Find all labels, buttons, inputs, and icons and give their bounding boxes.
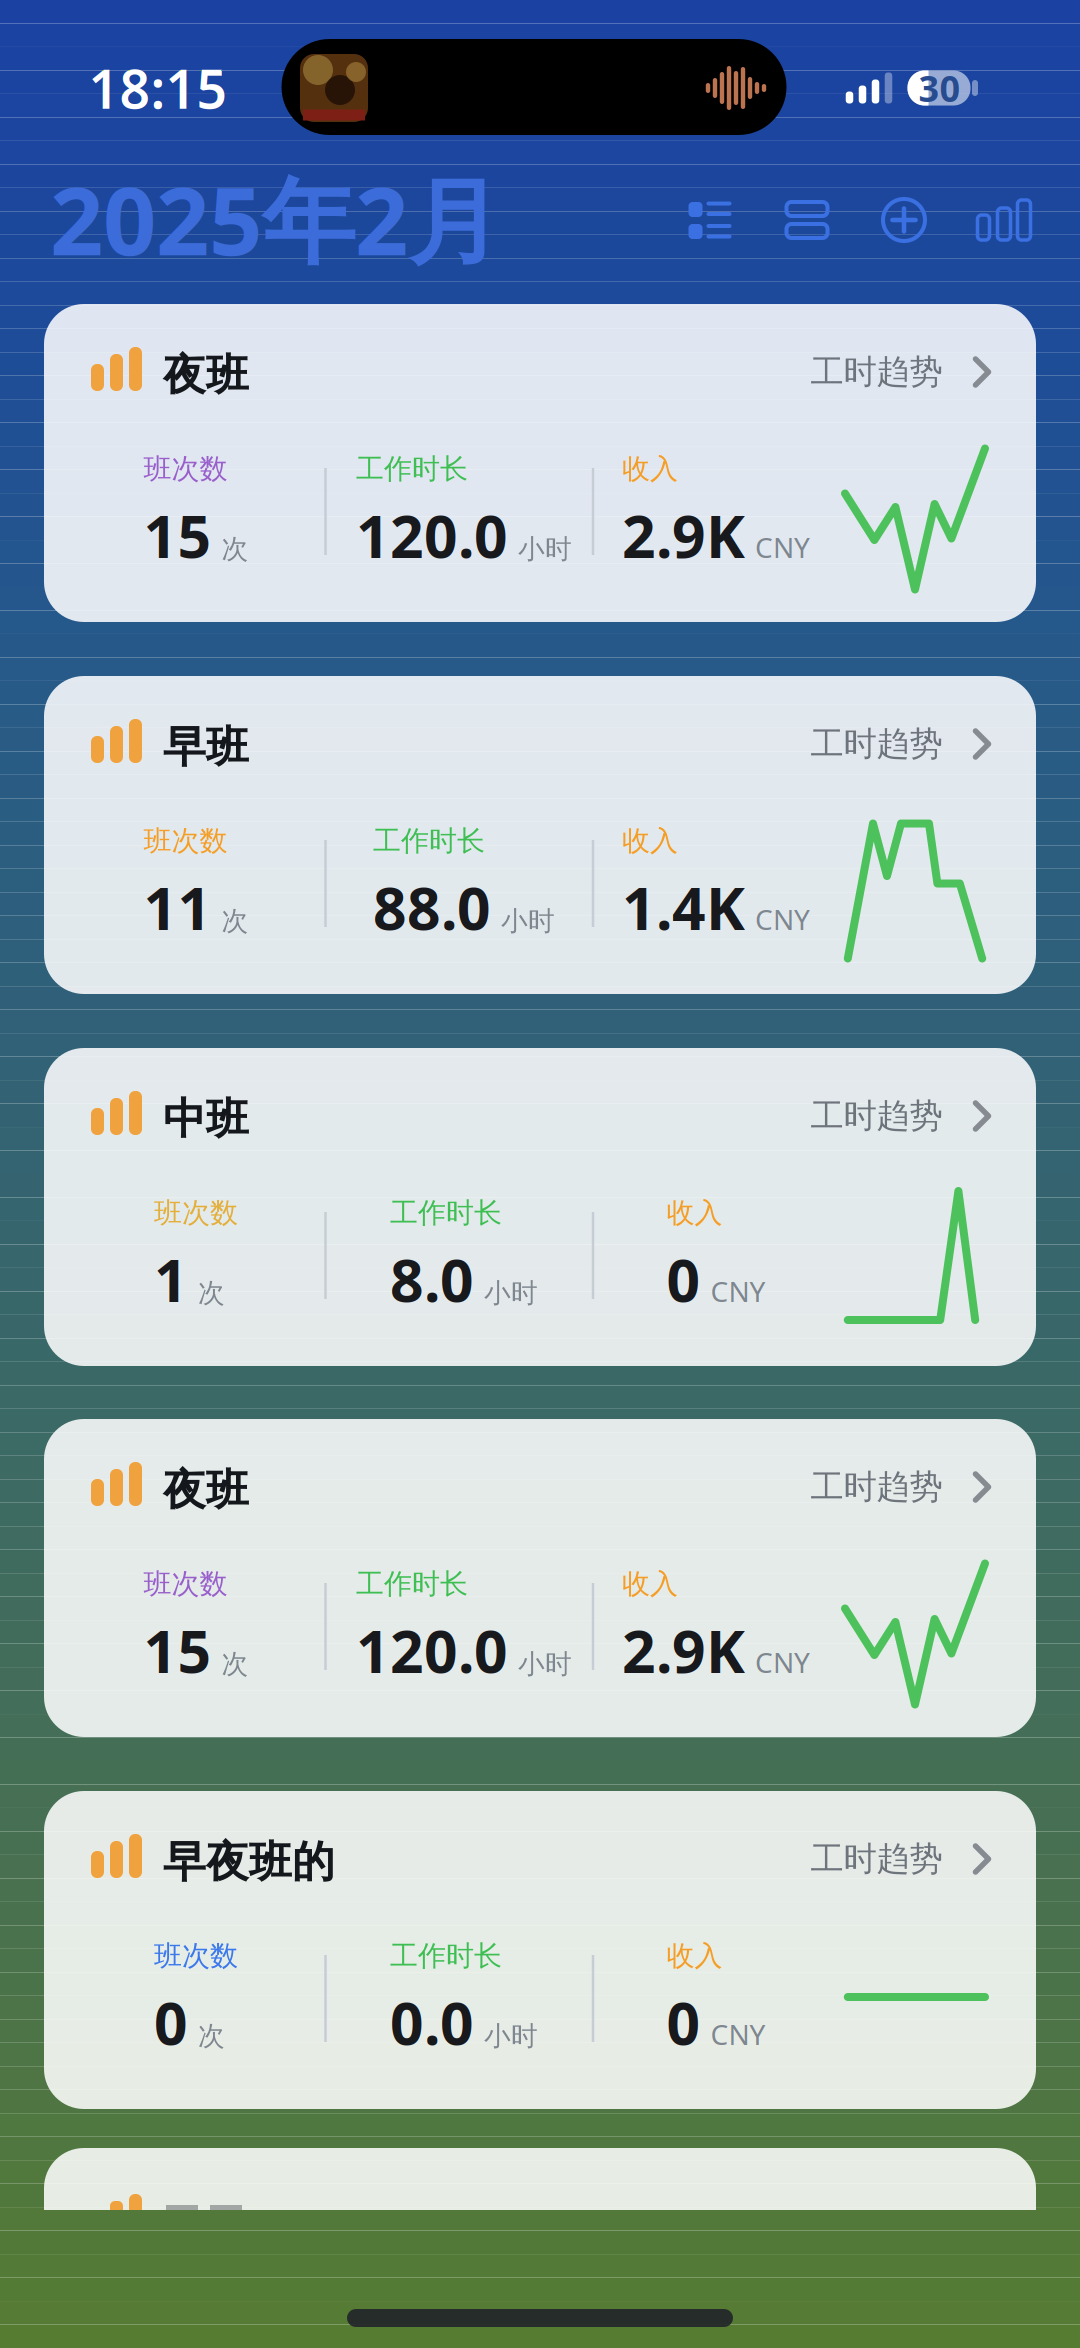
- button[interactable]: [44, 304, 1036, 622]
- staticText: 15: [143, 1611, 211, 1689]
- staticText: 班次数: [143, 452, 227, 486]
- staticText: 班次数: [154, 1939, 238, 1973]
- staticText: CNY: [755, 528, 810, 566]
- button[interactable]: 工时趋势: [810, 1466, 991, 1507]
- staticText: 收入: [622, 452, 678, 486]
- button[interactable]: [44, 676, 1036, 994]
- staticText: 2025年2月: [50, 157, 501, 281]
- staticText: 早班: [163, 721, 249, 773]
- button[interactable]: 工时趋势: [810, 351, 991, 392]
- button[interactable]: Card view: [784, 200, 829, 240]
- staticText: 中班: [163, 1093, 249, 1145]
- button[interactable]: 工时趋势: [810, 723, 991, 764]
- staticText: 8.0: [390, 1240, 474, 1318]
- staticText: 工作时长: [390, 1196, 502, 1230]
- staticText: 早夜班的: [163, 1836, 335, 1888]
- staticText: 1: [154, 1240, 188, 1318]
- staticText: 0: [666, 1240, 700, 1318]
- staticText: 收入: [622, 824, 678, 858]
- staticText: CNY: [710, 2015, 765, 2053]
- staticText: 夜班: [163, 349, 249, 401]
- staticText: 班次数: [143, 1567, 227, 1601]
- button[interactable]: [44, 1791, 1036, 2109]
- staticText: 工时趋势: [810, 351, 942, 392]
- staticText: 0: [666, 1983, 700, 2061]
- staticText: 小时: [518, 533, 572, 565]
- staticText: 工时趋势: [810, 1466, 942, 1507]
- staticText: 工作时长: [390, 1939, 502, 1973]
- button[interactable]: Add: [881, 197, 927, 243]
- staticText: 30: [918, 64, 960, 112]
- staticText: 工时趋势: [810, 1095, 942, 1136]
- staticText: 次: [221, 1648, 248, 1680]
- staticText: 次: [221, 533, 248, 565]
- staticText: CNY: [755, 900, 810, 938]
- staticText: 次: [198, 1277, 225, 1309]
- staticText: 班次数: [154, 1196, 238, 1230]
- staticText: 工作时长: [356, 1567, 468, 1601]
- staticText: 夜班: [163, 1464, 249, 1516]
- staticText: 0: [154, 1983, 188, 2061]
- staticText: CNY: [755, 1643, 810, 1681]
- staticText: 小时: [484, 1277, 538, 1309]
- staticText: 收入: [666, 1939, 722, 1973]
- staticText: 小时: [501, 905, 555, 937]
- staticText: 2.9K: [622, 1611, 745, 1689]
- staticText: 收入: [622, 1567, 678, 1601]
- button[interactable]: 工时趋势: [810, 1838, 991, 1879]
- staticText: 2.9K: [622, 496, 745, 574]
- staticText: 工时趋势: [810, 723, 942, 764]
- staticText: 15: [143, 496, 211, 574]
- staticText: 120.0: [356, 1611, 508, 1689]
- staticText: 11: [143, 868, 211, 946]
- button[interactable]: Statistics: [977, 200, 1030, 240]
- button[interactable]: [44, 1419, 1036, 1737]
- staticText: 次: [198, 2020, 225, 2052]
- staticText: 次: [221, 905, 248, 937]
- staticText: 工作时长: [373, 824, 485, 858]
- staticText: 收入: [666, 1196, 722, 1230]
- staticText: 工时趋势: [810, 1838, 942, 1879]
- staticText: 1.4K: [622, 868, 745, 946]
- staticText: 班次数: [143, 824, 227, 858]
- button[interactable]: 工时趋势: [810, 1095, 991, 1136]
- staticText: 工作时长: [356, 452, 468, 486]
- staticText: 120.0: [356, 496, 508, 574]
- staticText: 0.0: [390, 1983, 474, 2061]
- staticText: 小时: [484, 2020, 538, 2052]
- staticText: CNY: [710, 1272, 765, 1310]
- staticText: 18:15: [88, 53, 227, 123]
- button[interactable]: [44, 1048, 1036, 1366]
- staticText: 88.0: [373, 868, 491, 946]
- button[interactable]: List view: [688, 200, 731, 240]
- staticText: 小时: [518, 1648, 572, 1680]
